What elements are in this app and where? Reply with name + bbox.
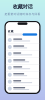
button[interactable] [6, 37, 39, 44]
button[interactable] [6, 71, 39, 78]
staticText: 收藏对话 [12, 3, 32, 10]
button[interactable] [6, 57, 39, 64]
staticText: 收藏 [8, 30, 14, 33]
button[interactable] [6, 64, 39, 71]
button[interactable] [6, 78, 39, 85]
button[interactable] [8, 33, 22, 36]
button[interactable] [6, 85, 39, 92]
staticText: 把重要对话随时保存与回看 [4, 13, 40, 16]
button[interactable] [6, 51, 39, 57]
button[interactable] [6, 44, 39, 51]
button[interactable] [22, 33, 37, 36]
